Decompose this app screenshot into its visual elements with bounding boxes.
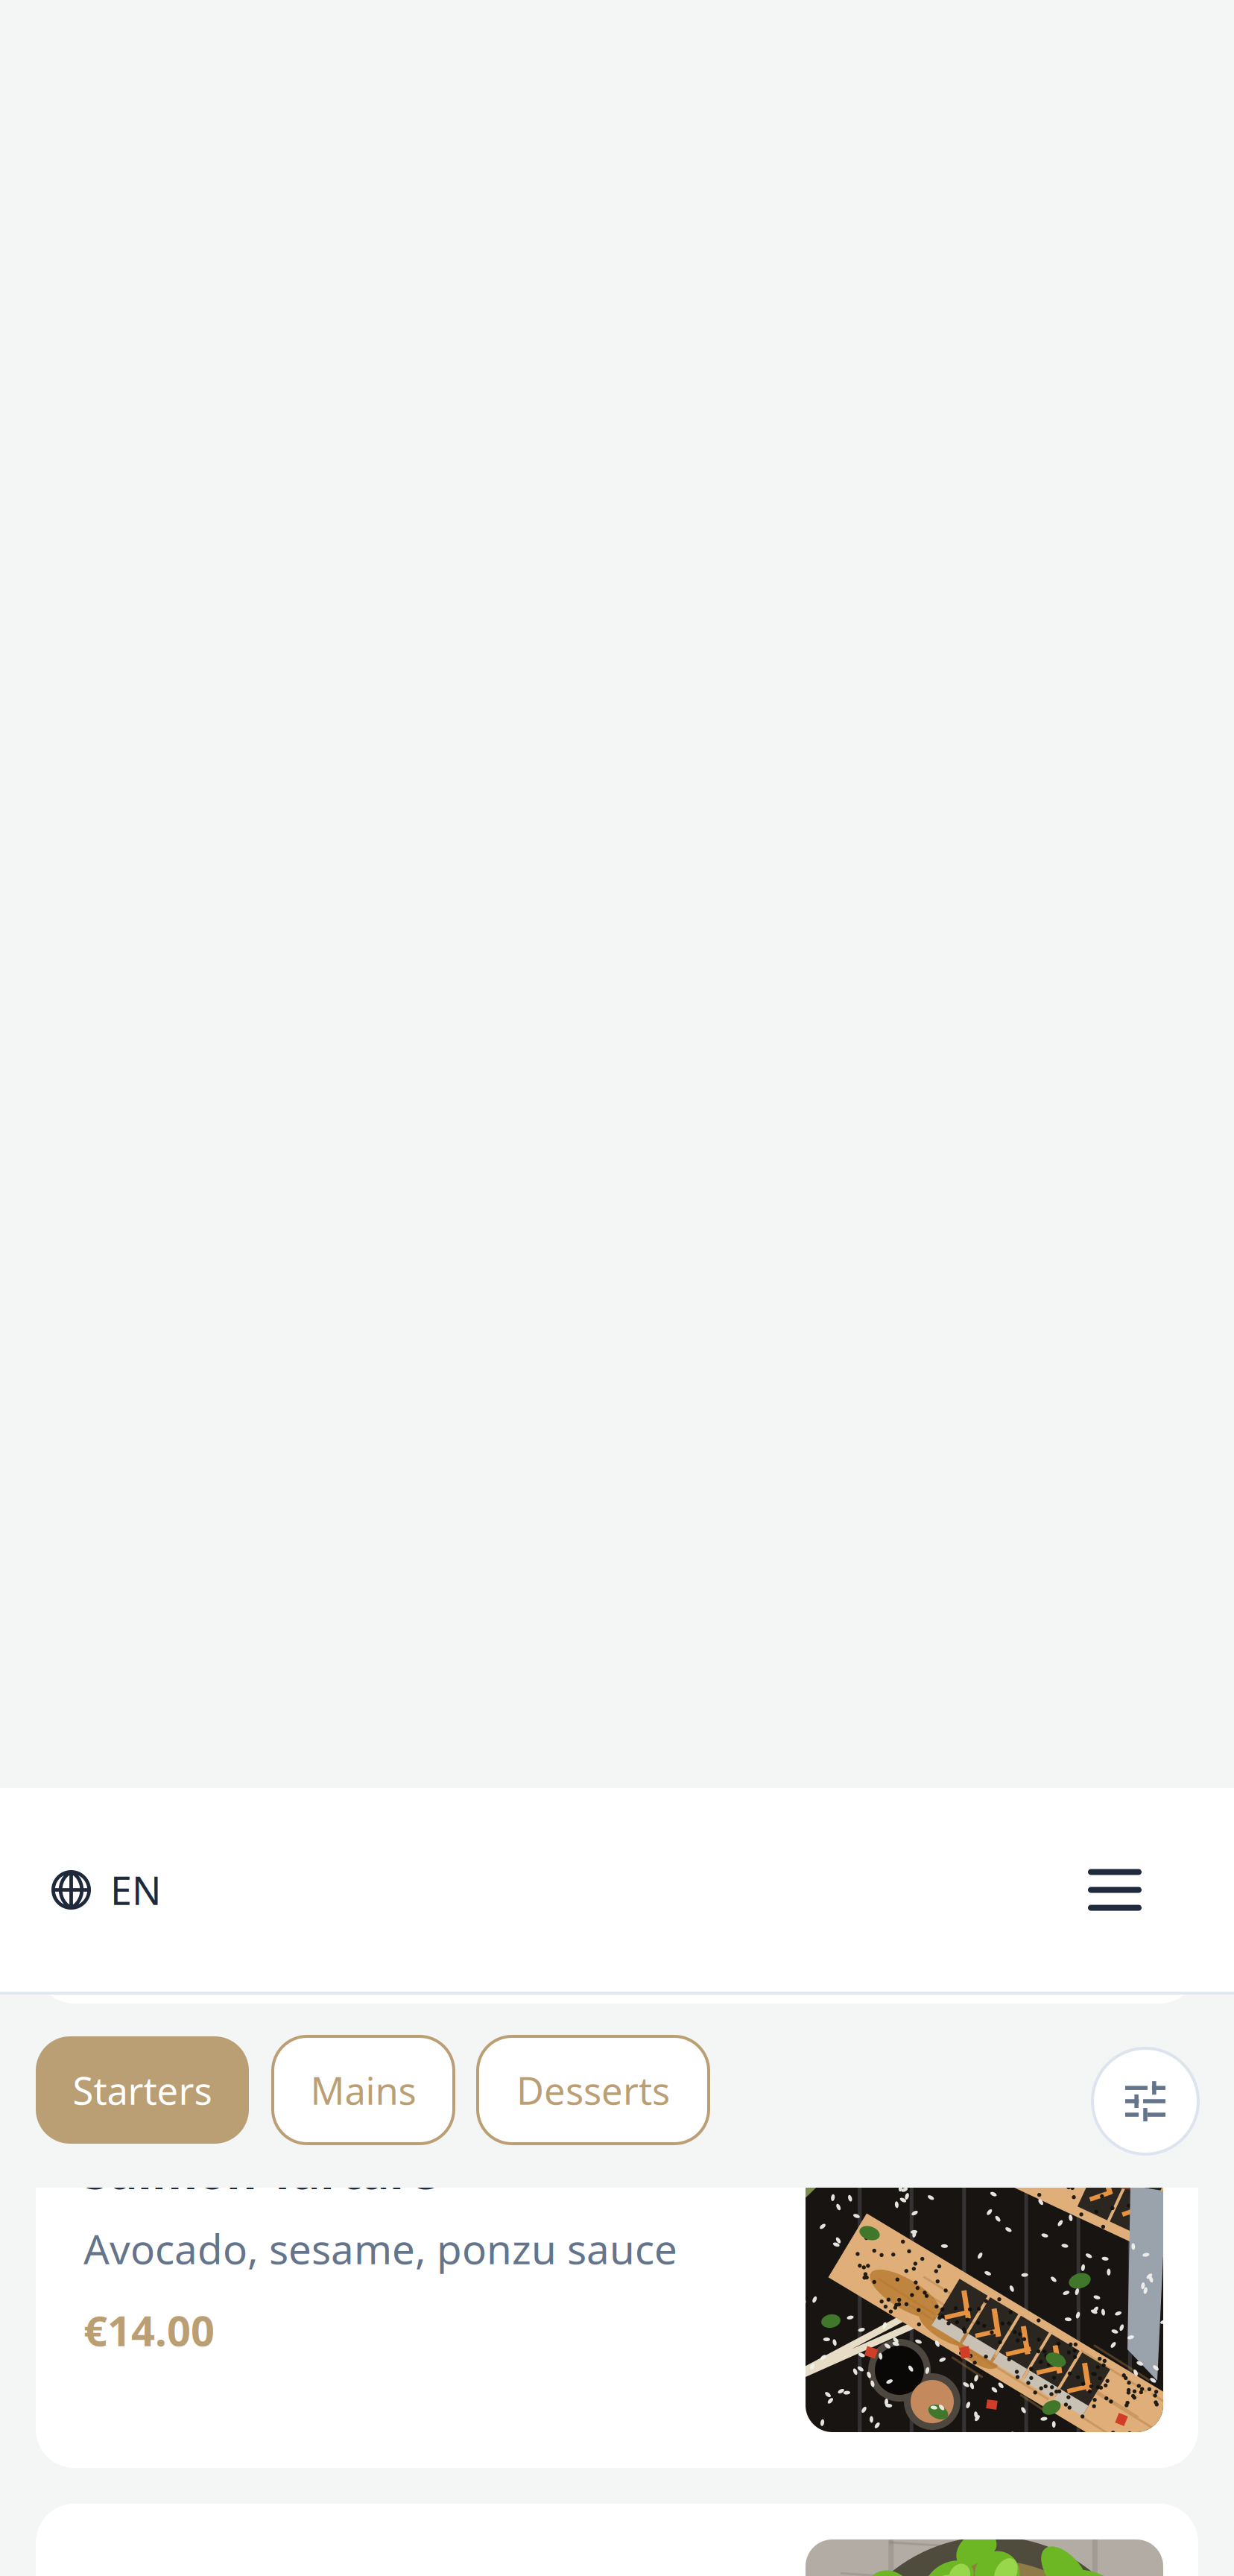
staticText: Desserts xyxy=(516,2065,670,2115)
button[interactable]: Garden Salad xyxy=(36,2504,1198,2576)
button[interactable]: Starters xyxy=(36,2036,249,2144)
staticText: EN xyxy=(110,1864,162,1916)
staticText: €16.00 xyxy=(83,1838,215,1893)
staticText: €14.00 xyxy=(83,2302,215,2358)
staticText: Salmon Tartare xyxy=(83,2140,437,2202)
button[interactable]: EN xyxy=(51,1864,162,1916)
staticText: Avocado, sesame, ponzu sauce xyxy=(83,2221,677,2275)
button[interactable]: Menu xyxy=(1088,1869,1142,1911)
button[interactable]: Mains xyxy=(273,2036,454,2144)
button[interactable]: Desserts xyxy=(478,2036,709,2144)
button[interactable]: Filters xyxy=(1092,2048,1198,2154)
staticText: Mains xyxy=(310,2065,416,2115)
button[interactable]: Tuna Crudo xyxy=(36,1575,1198,2004)
staticText: Starters xyxy=(73,2065,212,2115)
staticText: Citrus, chilli, olive oil xyxy=(83,1757,472,1811)
button[interactable]: Salmon Tartare xyxy=(36,2039,1198,2468)
